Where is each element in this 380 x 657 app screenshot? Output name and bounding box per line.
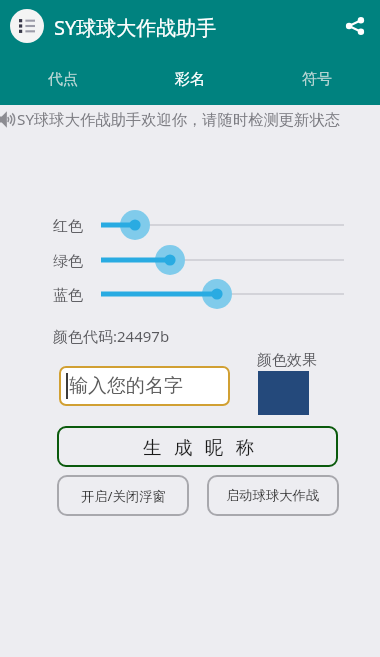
staticText: 颜色代码:24497b [53, 326, 170, 346]
staticText: 输入您的名字 [69, 374, 183, 398]
button[interactable]: 输入您的名字 [59, 366, 230, 406]
button[interactable]: 启动球球大作战 [207, 475, 339, 516]
staticText: 符号 [302, 70, 332, 89]
button[interactable]: 红色 [95, 210, 350, 240]
button[interactable]: 彩名 [126, 56, 253, 105]
button[interactable]: 符号 [253, 56, 380, 105]
button[interactable]: 绿色 [95, 245, 350, 275]
staticText: 绿色 [53, 252, 83, 271]
staticText: 生 成 昵 称 [143, 434, 259, 459]
staticText: 蓝色 [53, 286, 83, 305]
staticText: 彩名 [175, 70, 205, 89]
staticText: 红色 [53, 217, 83, 236]
staticText: 启动球球大作战 [226, 487, 320, 504]
button[interactable]: 代点 [0, 56, 126, 105]
button[interactable]: Menu [10, 9, 44, 43]
button[interactable]: Share [332, 3, 378, 49]
button[interactable]: 开启/关闭浮窗 [57, 475, 189, 516]
staticText: 颜色效果 [257, 351, 317, 370]
button[interactable]: 蓝色 [95, 279, 350, 309]
staticText: 代点 [48, 70, 78, 89]
staticText: SY球球大作战助手 [54, 14, 217, 41]
staticText: SY球球大作战助手欢迎你，请随时检测更新状态 [17, 109, 340, 130]
staticText: 开启/关闭浮窗 [81, 487, 166, 505]
button[interactable]: 生 成 昵 称 [57, 426, 338, 467]
